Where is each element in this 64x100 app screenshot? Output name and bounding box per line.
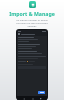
button[interactable]: App icon <box>29 1 36 8</box>
button[interactable]: Back <box>22 97 25 100</box>
button[interactable] <box>18 61 46 62</box>
button[interactable]: Recents <box>39 97 42 100</box>
staticText: Import & Manage <box>9 10 55 17</box>
button[interactable]: Home <box>31 97 34 100</box>
staticText: an infinite number of assets fast with t… <box>4 18 60 27</box>
button[interactable] <box>38 91 45 94</box>
